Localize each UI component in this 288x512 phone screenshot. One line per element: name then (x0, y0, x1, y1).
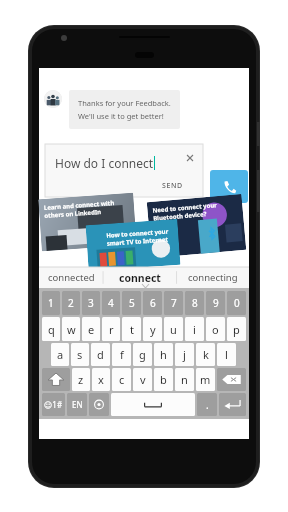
button[interactable]: Settings (89, 393, 109, 416)
staticText: x (98, 372, 104, 387)
staticText: h (160, 347, 167, 362)
button[interactable]: Call (210, 170, 248, 203)
button[interactable]: j (175, 343, 194, 366)
staticText: connect (119, 271, 161, 285)
button[interactable]: connecting (177, 267, 249, 288)
staticText: a (57, 347, 64, 362)
button[interactable]: k (196, 343, 215, 366)
staticText: EN (72, 399, 83, 410)
staticText: smart TV to Internet (107, 235, 169, 248)
button[interactable]: ☺1# (42, 393, 65, 416)
staticText: 6 (150, 296, 156, 310)
button[interactable]: Learn and connect with (38, 193, 137, 251)
staticText: How do I connect (55, 155, 154, 171)
staticText: 9 (213, 296, 219, 310)
button[interactable]: EN (67, 393, 87, 416)
staticText: 8 (192, 296, 198, 310)
staticText: connecting (188, 271, 238, 284)
button[interactable]: n (175, 368, 194, 391)
button[interactable]: y (143, 317, 162, 341)
button[interactable]: b (154, 368, 173, 391)
button[interactable]: h (154, 343, 173, 366)
staticText: Thanks for your Feedback. (78, 98, 171, 108)
button[interactable]: 4 (102, 291, 120, 315)
staticText: v (140, 372, 146, 387)
button[interactable]: Clear (184, 152, 196, 164)
staticText: g (139, 347, 146, 362)
button[interactable]: r (102, 317, 120, 341)
button[interactable]: . (197, 393, 217, 416)
button[interactable]: Space (111, 393, 195, 416)
staticText: SEND (162, 181, 183, 191)
button[interactable]: t (122, 317, 141, 341)
staticText: others on LinkedIn (44, 208, 102, 220)
staticText: 3 (88, 296, 94, 310)
button[interactable]: SEND (158, 179, 187, 193)
button[interactable]: z (72, 368, 90, 391)
button[interactable]: Enter (219, 393, 246, 416)
staticText: r (109, 322, 114, 337)
button[interactable]: 6 (143, 291, 162, 315)
staticText: z (78, 372, 84, 387)
staticText: c (119, 372, 125, 387)
button[interactable]: v (133, 368, 152, 391)
staticText: p (233, 322, 240, 337)
staticText: f (120, 347, 124, 362)
button[interactable]: s (71, 343, 89, 366)
staticText: w (67, 322, 76, 337)
button[interactable]: 2 (62, 291, 80, 315)
staticText: q (48, 322, 55, 337)
button[interactable]: Backspace (217, 368, 246, 391)
button[interactable]: l (217, 343, 236, 366)
staticText: . (206, 398, 209, 412)
button[interactable]: w (62, 317, 80, 341)
staticText: ☺1# (44, 399, 63, 410)
staticText: 2 (68, 296, 74, 310)
button[interactable]: c (112, 368, 131, 391)
button[interactable]: 9 (206, 291, 225, 315)
staticText: Need to connect your (152, 201, 218, 215)
button[interactable]: 5 (122, 291, 141, 315)
staticText: i (193, 322, 196, 337)
staticText: s (77, 347, 83, 362)
staticText: t (130, 322, 134, 337)
staticText: 1 (48, 296, 54, 310)
button[interactable]: e (82, 317, 100, 341)
button[interactable]: x (92, 368, 110, 391)
staticText: Bluetooth device? (153, 210, 207, 223)
staticText: connected (48, 271, 95, 284)
button[interactable]: connect (103, 267, 177, 288)
staticText: k (203, 347, 209, 362)
button[interactable]: 3 (82, 291, 100, 315)
staticText: We'll use it to get better! (78, 111, 164, 121)
button[interactable]: q (42, 317, 60, 341)
staticText: j (183, 347, 186, 362)
button[interactable]: Shift (42, 368, 70, 391)
button[interactable]: u (164, 317, 183, 341)
staticText: 7 (171, 296, 177, 310)
button[interactable]: d (91, 343, 110, 366)
button[interactable]: p (227, 317, 246, 341)
staticText: e (88, 322, 95, 337)
button[interactable]: connected (39, 267, 103, 288)
staticText: o (212, 322, 219, 337)
staticText: Learn and connect with (44, 199, 115, 212)
button[interactable]: How to connect your (85, 219, 180, 271)
button[interactable]: i (185, 317, 204, 341)
button[interactable]: f (112, 343, 131, 366)
button[interactable]: o (206, 317, 225, 341)
staticText: l (225, 347, 228, 362)
button[interactable]: 0 (227, 291, 246, 315)
staticText: b (160, 372, 167, 387)
button[interactable]: 8 (185, 291, 204, 315)
staticText: n (181, 372, 188, 387)
button[interactable]: m (196, 368, 215, 391)
staticText: m (200, 372, 211, 387)
button[interactable]: g (133, 343, 152, 366)
button[interactable]: Need to connect your (147, 194, 246, 258)
button[interactable]: 7 (164, 291, 183, 315)
button[interactable]: a (51, 343, 69, 366)
staticText: How to connect your (106, 227, 169, 240)
button[interactable]: 1 (42, 291, 60, 315)
staticText: u (170, 322, 177, 337)
